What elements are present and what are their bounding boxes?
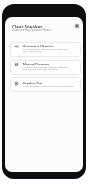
button[interactable]: Automatic Cleaning (10, 42, 81, 57)
staticText: Manual Cleaning (23, 63, 49, 65)
button[interactable]: Speaker Test (10, 77, 81, 92)
staticText: Check if there is a problem with your sp… (23, 84, 74, 87)
staticText: It automatically cleans by playing sound… (23, 47, 68, 52)
staticText: Speaker Test (23, 82, 43, 84)
button[interactable]: Manual Cleaning (10, 60, 81, 75)
staticText: Quick and Easy Speaker Cleaner (12, 28, 51, 32)
staticText: Clear Speaker (12, 24, 43, 28)
staticText: To clean your speaker, set the frequency… (23, 65, 68, 70)
staticText: Automatic Cleaning (23, 45, 54, 47)
button[interactable]: Settings (73, 22, 81, 30)
